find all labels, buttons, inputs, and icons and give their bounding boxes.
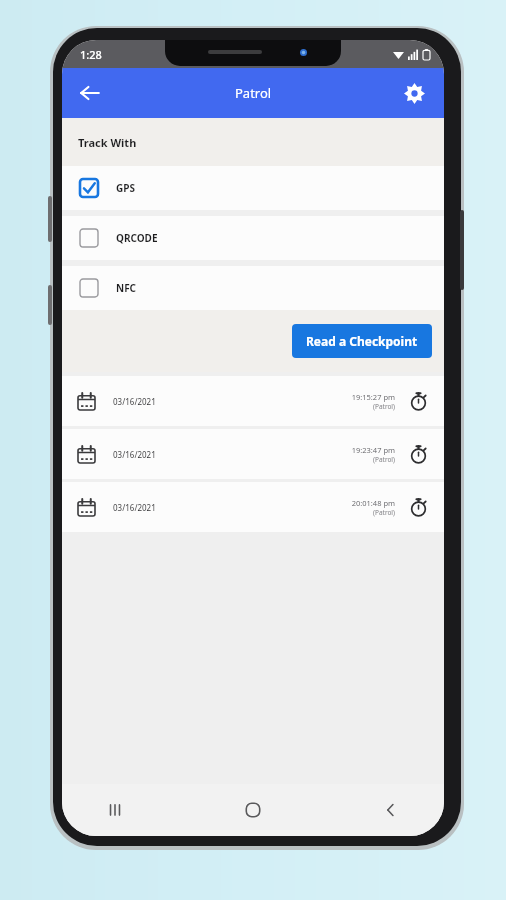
button[interactable]: Back xyxy=(368,787,414,833)
button[interactable]: Recents xyxy=(92,787,138,833)
staticText: QRCODE xyxy=(116,231,158,245)
staticText: 20:01:48 pm xyxy=(351,498,395,508)
button[interactable]: 03/16/2021 xyxy=(62,482,444,532)
staticText: NFC xyxy=(116,281,137,295)
button[interactable]: Back xyxy=(70,73,110,113)
staticText: Read a Checkpoint xyxy=(306,333,418,349)
staticText: 03/16/2021 xyxy=(113,502,156,513)
button[interactable]: Read a Checkpoint xyxy=(292,324,432,358)
staticText: 03/16/2021 xyxy=(113,396,156,407)
button[interactable]: Home xyxy=(230,787,276,833)
button[interactable]: NFC xyxy=(62,266,444,310)
staticText: 19:15:27 pm xyxy=(351,392,395,402)
button[interactable]: Settings xyxy=(394,73,434,113)
button[interactable]: 03/16/2021 xyxy=(62,376,444,426)
staticText: 1:28 xyxy=(80,47,102,62)
staticText: Track With xyxy=(78,135,137,150)
staticText: (Patrol) xyxy=(373,402,395,411)
staticText: (Patrol) xyxy=(373,455,395,464)
staticText: Patrol xyxy=(235,84,272,102)
staticText: 03/16/2021 xyxy=(113,449,156,460)
button[interactable]: GPS xyxy=(62,166,444,210)
button[interactable]: QRCODE xyxy=(62,216,444,260)
button[interactable]: 03/16/2021 xyxy=(62,429,444,479)
staticText: 19:23:47 pm xyxy=(351,445,395,455)
staticText: (Patrol) xyxy=(373,508,395,517)
staticText: GPS xyxy=(116,181,135,195)
